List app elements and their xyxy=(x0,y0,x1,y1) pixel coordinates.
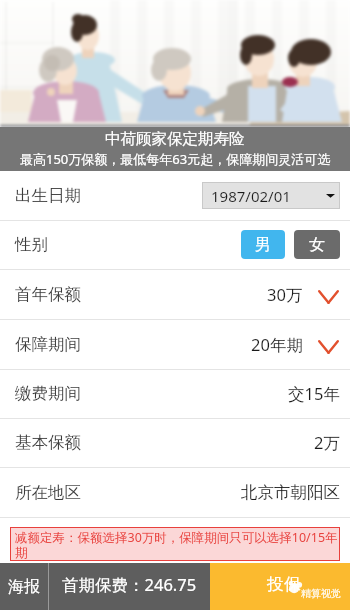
staticText: 30万 xyxy=(267,283,303,306)
staticText: 海报 xyxy=(8,577,40,597)
staticText: 男 xyxy=(255,235,271,255)
button[interactable]: 缴费期间 xyxy=(0,369,350,418)
staticText: 北京市朝阳区 xyxy=(241,482,340,503)
staticText: 减额定寿：保额选择30万时，保障期间只可以选择10/15年期 xyxy=(15,529,340,561)
button[interactable]: 所在地区 xyxy=(0,467,350,517)
button[interactable]: 投保 xyxy=(210,563,350,610)
button[interactable]: 男 xyxy=(241,230,285,259)
staticText: 20年期 xyxy=(251,333,303,356)
staticText: 缴费期间 xyxy=(15,383,81,404)
staticText: 2万 xyxy=(314,431,340,454)
button[interactable]: Expand xyxy=(317,330,339,364)
button[interactable]: 保障期间 xyxy=(0,319,350,369)
staticText: 交15年 xyxy=(288,382,340,405)
staticText: 基本保额 xyxy=(15,432,81,453)
staticText: 女 xyxy=(309,235,325,255)
staticText: 性别 xyxy=(15,234,48,255)
staticText: 所在地区 xyxy=(15,482,81,503)
button[interactable]: Expand xyxy=(317,280,339,314)
staticText: 1987/02/01 xyxy=(211,186,291,206)
staticText: 最高150万保额，最低每年63元起，保障期间灵活可选 xyxy=(20,150,331,168)
staticText: 首期保费：246.75 xyxy=(62,573,197,596)
staticText: 首年保额 xyxy=(15,284,81,305)
staticText: 中荷顾家保定期寿险 xyxy=(105,129,245,149)
button[interactable]: 海报 xyxy=(0,563,48,610)
button[interactable]: 出生日期 xyxy=(0,171,350,220)
staticText: 保障期间 xyxy=(15,334,81,355)
button[interactable]: 1987/02/01 xyxy=(202,182,340,209)
button[interactable]: 基本保额 xyxy=(0,418,350,467)
button[interactable]: 性别 xyxy=(0,220,350,269)
button[interactable]: 首年保额 xyxy=(0,269,350,319)
staticText: 精算视觉 xyxy=(301,587,341,600)
button[interactable]: 女 xyxy=(294,230,340,259)
staticText: 投保 xyxy=(267,574,301,595)
staticText: 出生日期 xyxy=(15,185,81,206)
